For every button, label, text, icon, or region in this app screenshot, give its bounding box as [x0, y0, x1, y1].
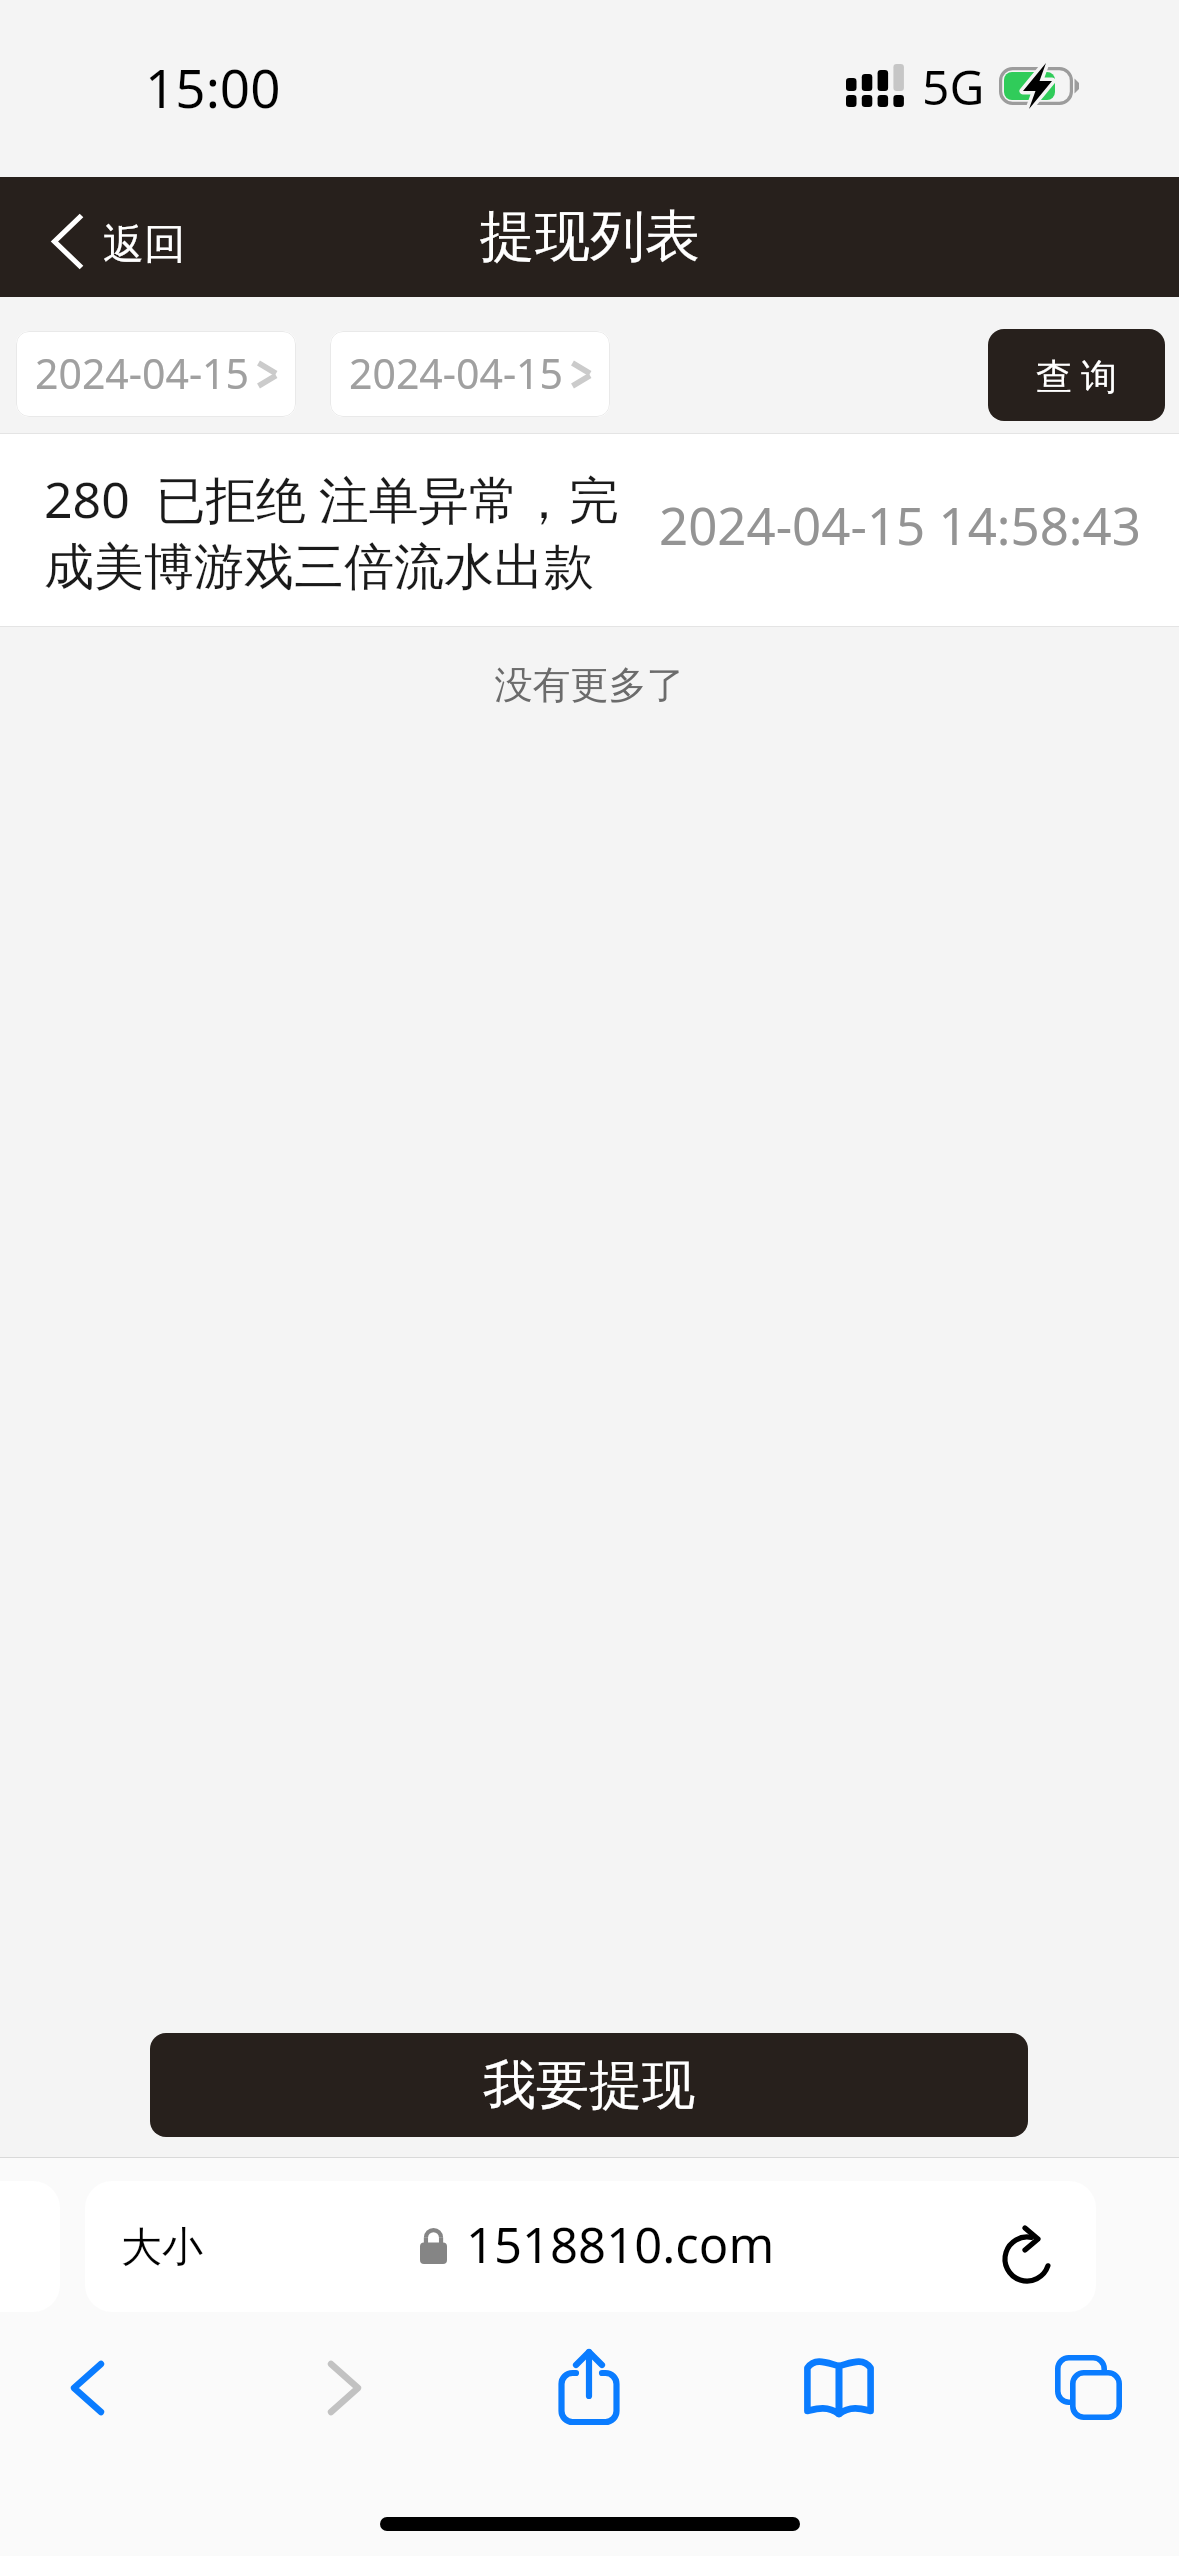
button[interactable]: Reload — [1004, 2227, 1050, 2281]
staticText: 返回 — [103, 219, 185, 271]
staticText: 查 询 — [1036, 351, 1118, 400]
staticText: 2024-04-15 14:58:43 — [659, 490, 1141, 559]
staticText: 我要提现 — [483, 2052, 695, 2119]
button[interactable]: 返回 — [30, 195, 201, 280]
button[interactable]: 280 已拒绝 注单异常，完成美博游戏三倍流水出款 — [0, 434, 1179, 626]
staticText: 15:00 — [145, 51, 281, 123]
button[interactable]: Tabs — [1055, 2355, 1127, 2425]
staticText: 2024-04-15 — [349, 345, 564, 401]
button[interactable]: 我要提现 — [150, 2033, 1028, 2137]
staticText: 提现列表 — [480, 202, 700, 271]
button[interactable]: 2024-04-15 — [330, 331, 610, 417]
staticText: 1518810.com — [466, 2211, 775, 2278]
button[interactable]: Back — [56, 2355, 116, 2431]
button[interactable]: 大小 — [85, 2181, 1096, 2312]
button[interactable]: 查 询 — [988, 329, 1165, 421]
button[interactable]: Share — [558, 2348, 620, 2428]
staticText: 2024-04-15 — [35, 345, 250, 401]
staticText: 280 已拒绝 注单异常，完成美博游戏三倍流水出款 — [44, 465, 644, 598]
staticText: 大小 — [121, 2222, 203, 2274]
button[interactable]: 2024-04-15 — [16, 331, 296, 417]
button[interactable]: Forward — [313, 2355, 373, 2431]
staticText: 没有更多了 — [0, 661, 1179, 709]
button[interactable]: Bookmarks — [804, 2357, 875, 2419]
staticText: 5G — [922, 54, 985, 119]
